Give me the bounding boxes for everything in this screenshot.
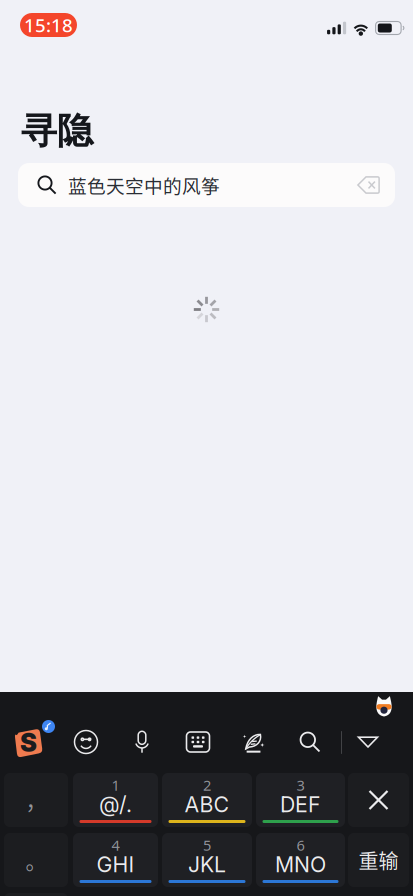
button[interactable]: Emoji — [64, 721, 108, 763]
button[interactable]: 4 — [73, 833, 158, 887]
button[interactable]: Delete — [348, 773, 409, 827]
button[interactable]: AI writing — [232, 721, 276, 763]
staticText: 4 — [111, 835, 119, 855]
staticText: S — [20, 727, 37, 758]
button[interactable]: 6 — [256, 833, 345, 887]
button[interactable]: Assistant — [371, 693, 397, 719]
staticText: MNO — [275, 852, 326, 877]
staticText: 6 — [296, 835, 304, 855]
staticText: @/. — [99, 792, 132, 817]
staticText: 1 — [111, 775, 119, 795]
button[interactable]: 5 — [162, 833, 252, 887]
button[interactable]: Sogou input settings — [6, 722, 50, 764]
staticText: GHI — [96, 852, 134, 877]
staticText: 3 — [296, 775, 304, 795]
button[interactable]: Keyboard layout — [176, 721, 220, 763]
staticText: 2 — [203, 775, 211, 795]
staticText: 5 — [203, 835, 211, 855]
staticText: ABC — [184, 792, 229, 817]
staticText: DEF — [280, 792, 321, 817]
staticText: 重输 — [358, 845, 398, 874]
staticText: 蓝色天空中的风筝 — [68, 171, 220, 198]
staticText: ， — [25, 785, 46, 815]
button[interactable]: 2 — [162, 773, 252, 827]
staticText: JKL — [188, 852, 226, 877]
button[interactable]: 3 — [256, 773, 345, 827]
staticText: 寻隐 — [21, 108, 93, 154]
button[interactable]: 1 — [73, 773, 158, 827]
button[interactable]: Hide keyboard — [346, 721, 390, 763]
button[interactable]: Search — [288, 721, 332, 763]
button[interactable]: ， — [4, 773, 68, 827]
staticText: 。 — [25, 845, 46, 875]
button[interactable]: 。 — [4, 833, 68, 887]
button[interactable]: Voice input — [120, 721, 164, 763]
button[interactable]: 蓝色天空中的风筝 — [18, 163, 395, 207]
staticText: 15:18 — [24, 13, 73, 37]
button[interactable]: 重输 — [348, 833, 409, 887]
